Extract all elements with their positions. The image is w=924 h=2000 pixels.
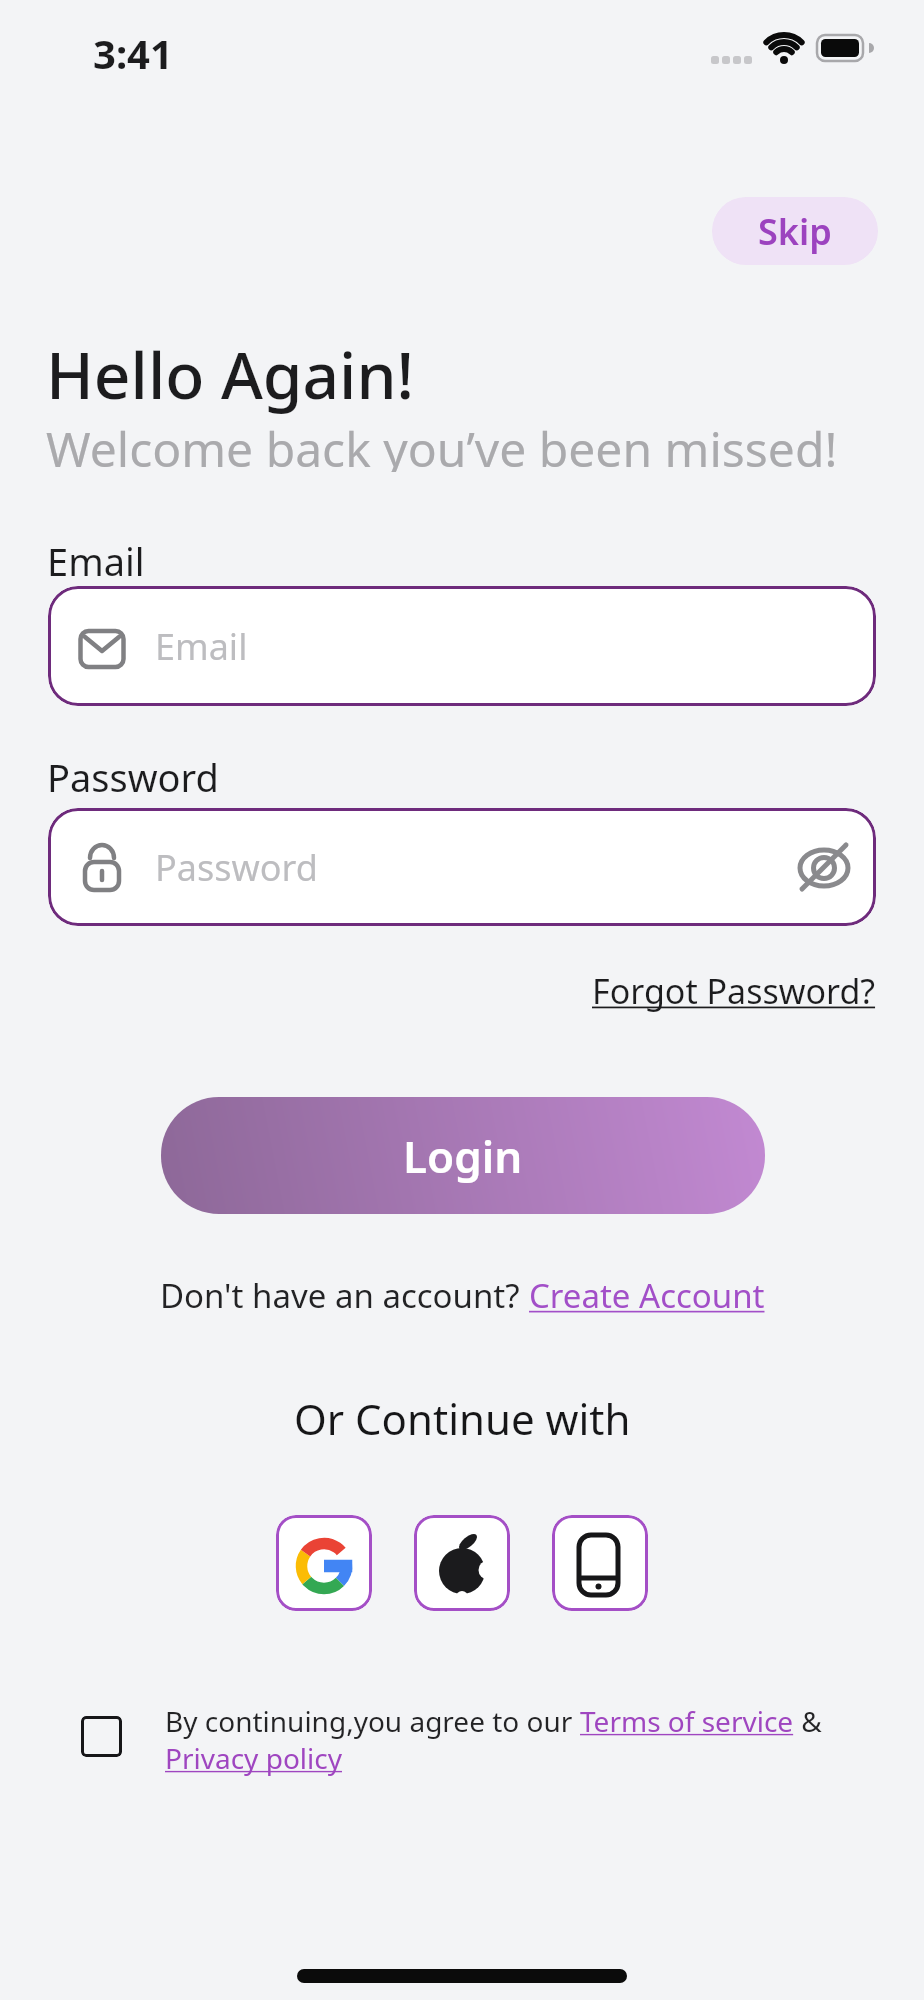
button[interactable]: Skip	[712, 197, 878, 265]
button[interactable]: Privacy policy	[165, 1739, 342, 1776]
staticText: Login	[403, 1126, 523, 1186]
button[interactable]: Terms of service	[580, 1702, 794, 1739]
staticText: &	[794, 1702, 822, 1739]
staticText: Hello Again!	[46, 331, 414, 418]
staticText: Email	[155, 622, 248, 671]
staticText: Skip	[758, 207, 832, 256]
staticText: 3:41	[93, 26, 173, 72]
staticText: Or Continue with	[294, 1390, 631, 1442]
button[interactable]	[552, 1515, 648, 1611]
button[interactable]: Password	[48, 808, 876, 926]
staticText: Email	[47, 535, 145, 577]
button[interactable]: Login	[161, 1097, 765, 1214]
staticText: Password	[155, 843, 318, 892]
button[interactable]	[798, 843, 850, 891]
button[interactable]: Email	[48, 586, 876, 706]
staticText: Password	[47, 751, 219, 793]
button[interactable]: Forgot Password?	[592, 968, 876, 1014]
button[interactable]: Create Account	[529, 1273, 765, 1318]
button[interactable]	[276, 1515, 372, 1611]
button[interactable]	[414, 1515, 510, 1611]
staticText: By continuing,you agree to our	[165, 1702, 580, 1739]
staticText: Welcome back you’ve been missed!	[46, 416, 838, 472]
button[interactable]	[81, 1716, 122, 1757]
staticText: Don't have an account?	[160, 1273, 529, 1318]
